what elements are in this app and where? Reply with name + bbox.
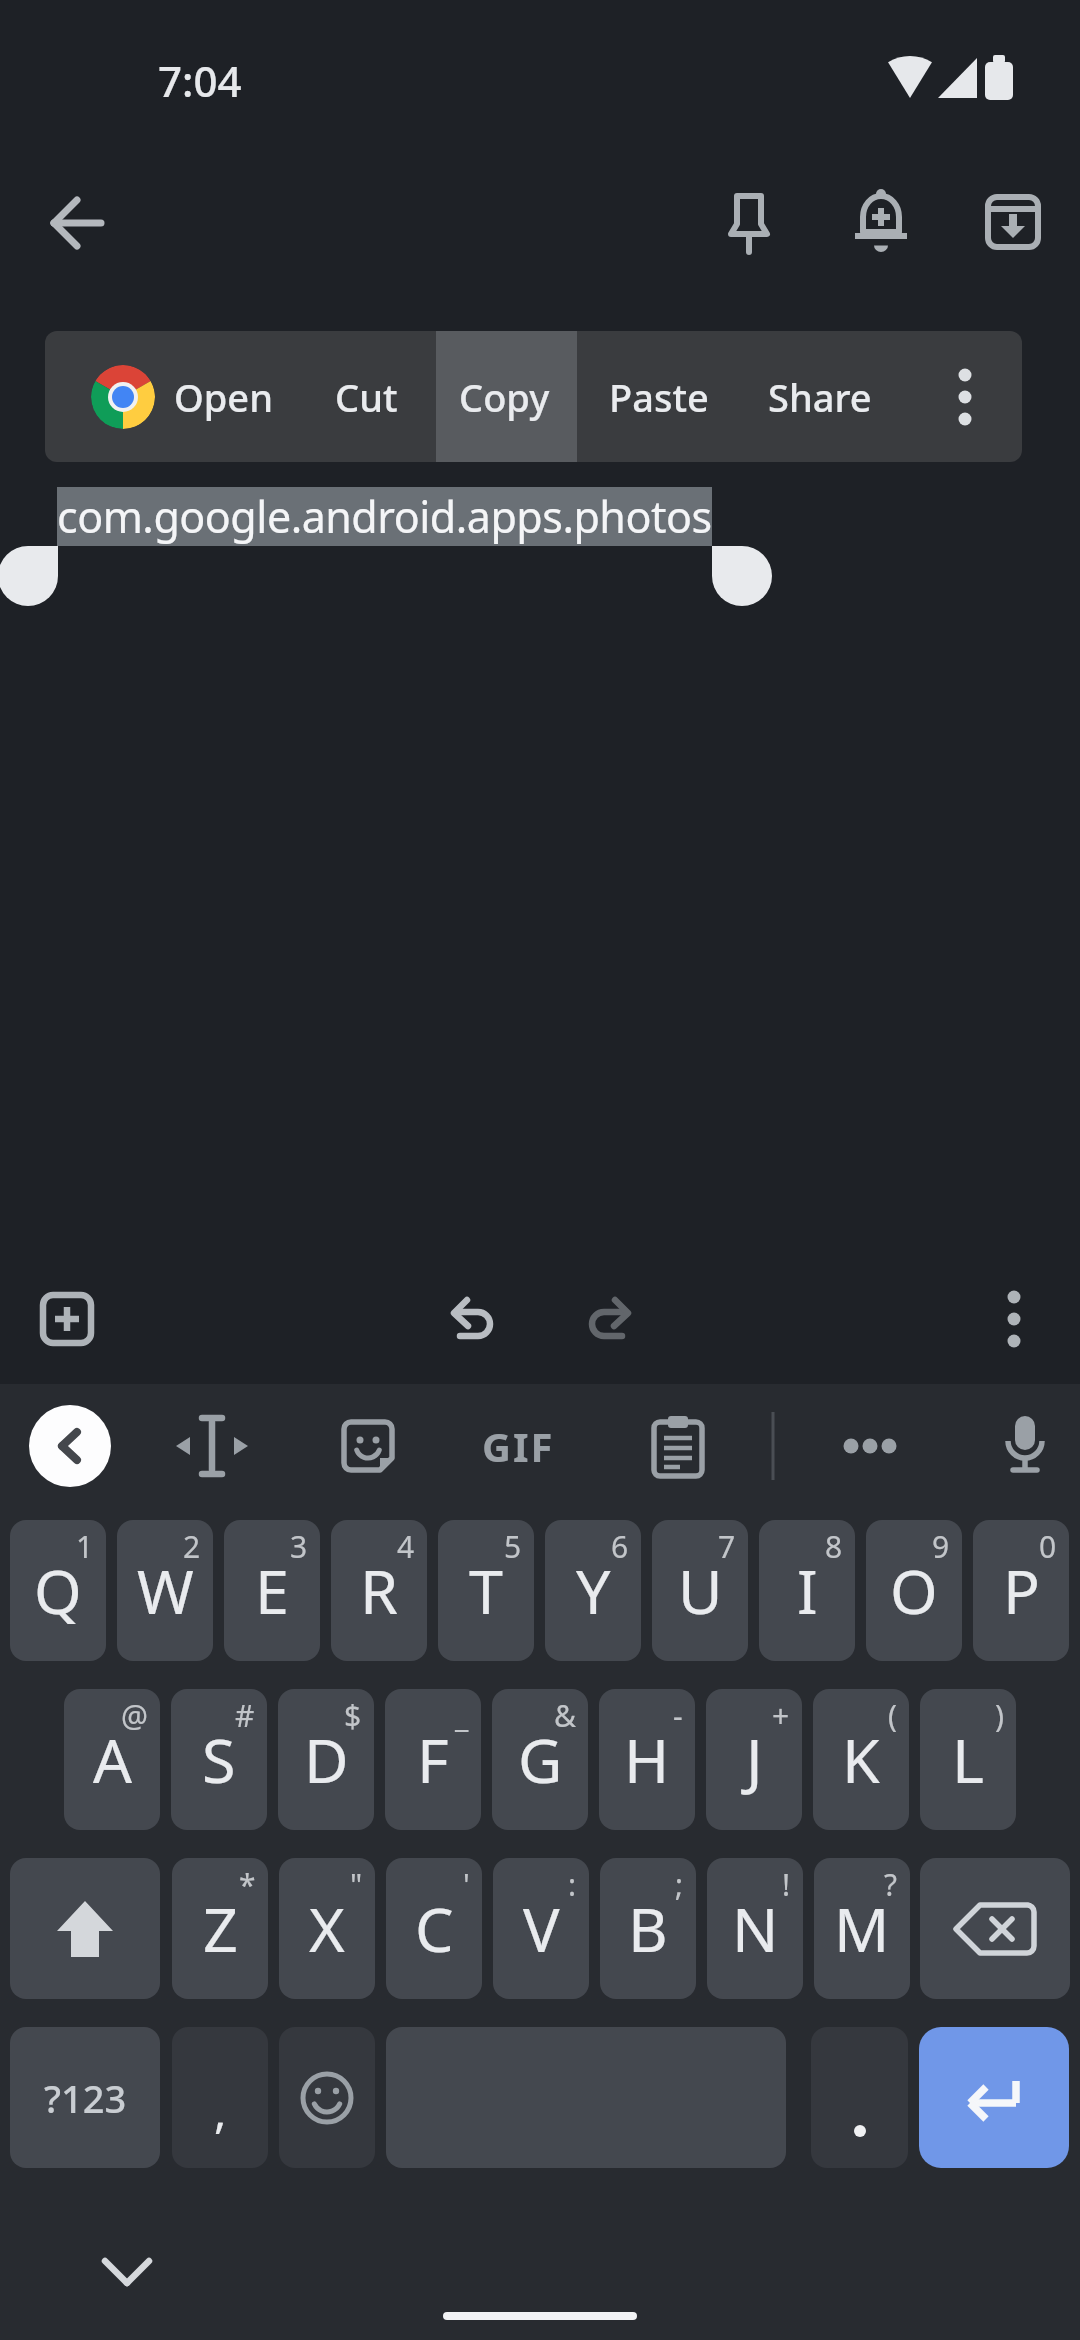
button[interactable] — [984, 1285, 1044, 1353]
button[interactable]: P — [973, 1520, 1069, 1661]
button[interactable] — [31, 1283, 103, 1355]
staticText: Open — [174, 371, 273, 423]
staticText: ( — [888, 1695, 897, 1736]
staticText: 1 — [76, 1526, 94, 1567]
staticText: 2 — [183, 1526, 201, 1567]
button[interactable]: V — [493, 1858, 589, 1999]
button[interactable]: D — [278, 1689, 374, 1830]
button[interactable]: L — [920, 1689, 1016, 1830]
staticText: Share — [768, 371, 872, 423]
button[interactable]: Copy — [434, 365, 574, 429]
staticText: C — [415, 1887, 454, 1970]
button[interactable] — [340, 1418, 396, 1474]
staticText: S — [202, 1718, 236, 1801]
staticText: ; — [675, 1864, 684, 1905]
button[interactable]: Z — [172, 1858, 268, 1999]
button[interactable]: O — [866, 1520, 962, 1661]
button[interactable] — [570, 1288, 642, 1348]
staticText: _ — [455, 1695, 469, 1736]
button[interactable] — [920, 1858, 1070, 1999]
button[interactable]: J — [706, 1689, 802, 1830]
staticText: GIF — [482, 1419, 555, 1473]
button[interactable] — [29, 1405, 111, 1487]
staticText: J — [746, 1718, 763, 1801]
staticText: , — [214, 2079, 227, 2142]
staticText: Copy — [459, 371, 550, 423]
staticText: * — [239, 1864, 256, 1905]
staticText: F — [417, 1718, 449, 1801]
button[interactable] — [91, 365, 155, 429]
button[interactable]: X — [279, 1858, 375, 1999]
staticText: Paste — [609, 371, 709, 423]
staticText: : — [568, 1864, 577, 1905]
button[interactable] — [977, 186, 1049, 258]
button[interactable] — [935, 365, 995, 429]
button[interactable] — [440, 1288, 512, 1348]
button[interactable]: F — [385, 1689, 481, 1830]
button[interactable]: Open — [153, 365, 293, 429]
button[interactable]: R — [331, 1520, 427, 1661]
button[interactable]: Y — [545, 1520, 641, 1661]
button[interactable]: Paste — [589, 365, 729, 429]
button[interactable]: Share — [750, 365, 890, 429]
staticText: ' — [463, 1864, 470, 1905]
staticText: 5 — [504, 1526, 522, 1567]
button[interactable] — [919, 2027, 1069, 2168]
button[interactable] — [650, 1412, 706, 1480]
button[interactable] — [713, 186, 785, 258]
staticText: N — [732, 1887, 779, 1970]
button[interactable]: Cut — [296, 365, 436, 429]
staticText: X — [309, 1887, 345, 1970]
button[interactable]: G — [492, 1689, 588, 1830]
button[interactable]: B — [600, 1858, 696, 1999]
button[interactable] — [997, 1410, 1053, 1482]
button[interactable] — [93, 2240, 161, 2304]
button[interactable]: K — [813, 1689, 909, 1830]
staticText: H — [624, 1718, 670, 1801]
staticText: ! — [782, 1864, 791, 1905]
button[interactable]: T — [438, 1520, 534, 1661]
button[interactable]: I — [759, 1520, 855, 1661]
staticText: 6 — [611, 1526, 629, 1567]
staticText: 7:04 — [158, 52, 242, 104]
button[interactable] — [811, 2027, 908, 2168]
staticText: M — [834, 1887, 890, 1970]
staticText: A — [93, 1718, 132, 1801]
staticText: ?123 — [44, 2072, 127, 2124]
button[interactable]: , — [172, 2027, 268, 2168]
button[interactable]: S — [171, 1689, 267, 1830]
button[interactable] — [279, 2027, 375, 2168]
button[interactable] — [436, 331, 577, 462]
button[interactable]: N — [707, 1858, 803, 1999]
staticText: G — [518, 1718, 563, 1801]
button[interactable]: GIF — [480, 1414, 556, 1478]
staticText: 7 — [718, 1526, 736, 1567]
staticText: Y — [576, 1549, 611, 1632]
button[interactable]: W — [117, 1520, 213, 1661]
button[interactable] — [174, 1410, 250, 1482]
staticText: 8 — [825, 1526, 843, 1567]
button[interactable]: E — [224, 1520, 320, 1661]
button[interactable]: M — [814, 1858, 910, 1999]
button[interactable] — [41, 187, 113, 259]
button[interactable]: ?123 — [10, 2027, 160, 2168]
button[interactable] — [845, 186, 917, 258]
staticText: V — [523, 1887, 560, 1970]
button[interactable]: A — [64, 1689, 160, 1830]
staticText: 3 — [290, 1526, 308, 1567]
button[interactable] — [10, 1858, 160, 1999]
staticText: W — [137, 1549, 194, 1632]
staticText: B — [628, 1887, 668, 1970]
button[interactable]: C — [386, 1858, 482, 1999]
button[interactable] — [836, 1418, 904, 1474]
staticText: K — [842, 1718, 880, 1801]
staticText: Q — [34, 1549, 82, 1632]
button[interactable]: Q — [10, 1520, 106, 1661]
button[interactable]: H — [599, 1689, 695, 1830]
staticText: E — [255, 1549, 289, 1632]
staticText: com.google.android.apps.photos — [57, 487, 712, 546]
button[interactable]: U — [652, 1520, 748, 1661]
staticText: U — [678, 1549, 723, 1632]
staticText: # — [235, 1695, 255, 1736]
